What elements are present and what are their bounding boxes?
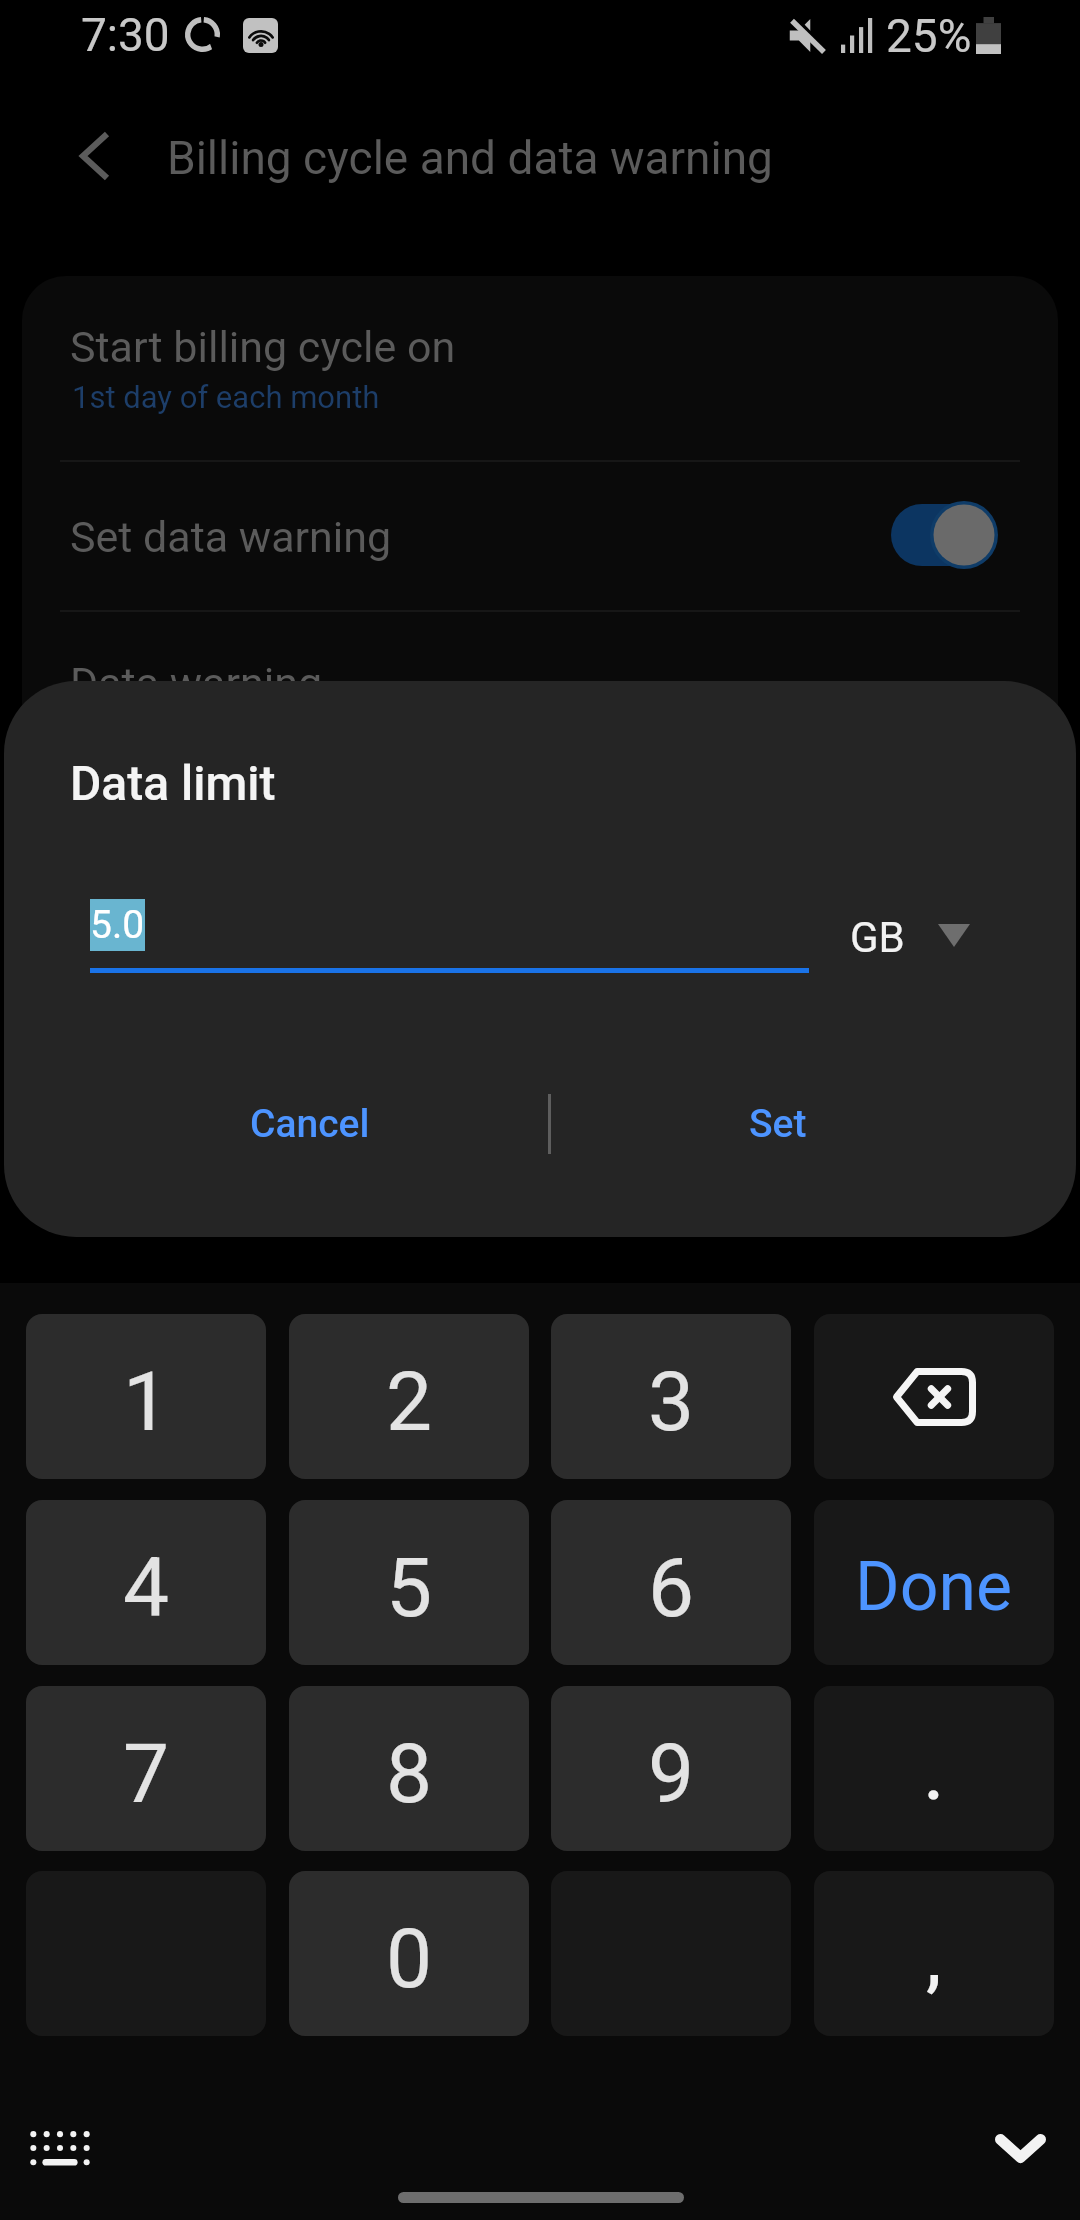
staticText: , <box>926 1918 942 2000</box>
button[interactable]: 1 <box>26 1314 266 1479</box>
staticText: 7 <box>123 1726 170 1822</box>
button[interactable]: . <box>814 1686 1054 1851</box>
staticText: Set <box>749 1101 807 1147</box>
staticText: . <box>924 1734 944 1816</box>
button[interactable]: 2 <box>289 1314 529 1479</box>
button[interactable]: 7 <box>26 1686 266 1851</box>
staticText: GB <box>850 913 905 962</box>
staticText: Data warning <box>70 658 323 708</box>
button[interactable]: 9 <box>551 1686 791 1851</box>
staticText: Done <box>855 1547 1013 1627</box>
staticText: Billing cycle and data warning <box>167 131 773 185</box>
button[interactable]: Switch keyboard <box>21 2110 98 2186</box>
staticText: 1st day of each month <box>72 379 380 415</box>
staticText: 9 <box>648 1726 695 1822</box>
staticText: 7:30 <box>81 8 170 62</box>
button[interactable] <box>22 276 1058 461</box>
button[interactable]: , <box>814 1871 1054 2036</box>
button[interactable]: 5 <box>289 1500 529 1665</box>
staticText: 8 <box>386 1726 433 1822</box>
button[interactable]: Unit GB <box>836 898 988 974</box>
staticText: 3 <box>648 1354 695 1450</box>
button[interactable]: Set <box>628 1060 928 1188</box>
button[interactable]: 3 <box>551 1314 791 1479</box>
staticText: 4 <box>123 1540 170 1636</box>
button[interactable]: Cancel <box>160 1060 460 1188</box>
staticText: 5 <box>386 1540 433 1636</box>
button[interactable]: 8 <box>289 1686 529 1851</box>
button[interactable]: 6 <box>551 1500 791 1665</box>
staticText: 25% <box>886 9 972 63</box>
button[interactable] <box>22 462 1058 611</box>
button[interactable]: Backspace <box>814 1314 1054 1479</box>
staticText: 1 <box>123 1354 170 1450</box>
button[interactable]: Done <box>814 1500 1054 1665</box>
staticText: 0 <box>386 1911 433 2007</box>
staticText: Set data warning <box>70 512 392 562</box>
staticText: 2 <box>386 1354 433 1450</box>
staticText: 6 <box>648 1540 695 1636</box>
button[interactable]: Back <box>63 124 127 188</box>
staticText: Data limit <box>70 755 276 811</box>
staticText: Cancel <box>250 1101 370 1147</box>
button[interactable]: Hide keyboard <box>975 2114 1066 2183</box>
button[interactable]: 0 <box>289 1871 529 2036</box>
staticText: Start billing cycle on <box>70 322 456 372</box>
staticText: 5.0 <box>90 902 145 948</box>
button[interactable]: 4 <box>26 1500 266 1665</box>
